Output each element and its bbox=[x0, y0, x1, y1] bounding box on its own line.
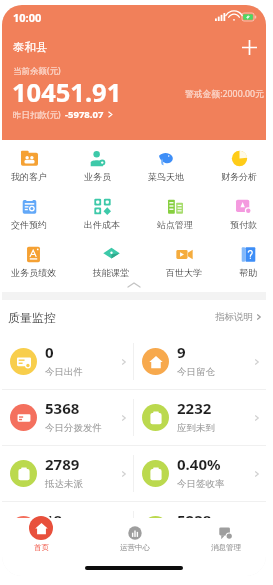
button[interactable]: 技能课堂 bbox=[90, 246, 132, 278]
button[interactable]: 菜鸟天地 bbox=[145, 150, 187, 182]
button[interactable]: 5368 bbox=[2, 390, 133, 445]
button[interactable]: 0 bbox=[2, 334, 133, 389]
staticText: 预付款 bbox=[230, 219, 257, 230]
button[interactable]: 消息管理 bbox=[197, 526, 255, 552]
staticText: 0.40% bbox=[177, 454, 221, 474]
staticText: 问题件 bbox=[45, 534, 74, 546]
staticText: 0 bbox=[45, 342, 54, 362]
button[interactable]: 运营中心 bbox=[106, 526, 164, 552]
staticText: 当前余额(元) bbox=[13, 65, 61, 77]
staticText: 百世大学 bbox=[166, 267, 202, 278]
button[interactable]: 财务分析 bbox=[218, 150, 260, 182]
staticText: 抵达未派 bbox=[45, 478, 83, 490]
staticText: 警戒金额:2000.00元 bbox=[185, 88, 264, 100]
staticText: 业务员 bbox=[84, 171, 111, 182]
button[interactable]: 业务员绩效 bbox=[8, 246, 59, 278]
button[interactable]: Add bbox=[238, 36, 260, 58]
staticText: 交件预约 bbox=[11, 219, 47, 230]
button[interactable]: 帮助 bbox=[236, 246, 260, 278]
staticText: 5368 bbox=[45, 398, 80, 418]
button[interactable]: 交件预约 bbox=[8, 198, 50, 230]
button[interactable]: 昨日扣款(元) bbox=[13, 108, 114, 121]
staticText: 质量监控 bbox=[8, 310, 56, 325]
staticText: 10451.91 bbox=[12, 75, 122, 110]
button[interactable]: 站点管理 bbox=[154, 198, 196, 230]
staticText: -5978.07 bbox=[65, 108, 104, 121]
button[interactable]: 出件成本 bbox=[81, 198, 123, 230]
button[interactable]: 预付款 bbox=[227, 198, 260, 230]
staticText: 技能课堂 bbox=[93, 267, 129, 278]
staticText: 业务员绩效 bbox=[11, 267, 56, 278]
staticText: 应到未到 bbox=[177, 422, 215, 434]
staticText: 菜鸟天地 bbox=[148, 171, 184, 182]
staticText: 首页 bbox=[34, 543, 49, 552]
button[interactable]: 9 bbox=[134, 334, 266, 389]
button[interactable]: 2789 bbox=[2, 446, 133, 501]
staticText: 今日签收率 bbox=[177, 478, 225, 490]
staticText: 今日分拨发件 bbox=[45, 422, 102, 434]
button[interactable]: 5238 bbox=[134, 502, 266, 557]
button[interactable]: 百世大学 bbox=[163, 246, 205, 278]
staticText: 消息管理 bbox=[211, 543, 241, 552]
staticText: 我的客户 bbox=[11, 171, 47, 182]
staticText: 10:00 bbox=[13, 10, 42, 25]
staticText: 站点管理 bbox=[157, 219, 193, 230]
staticText: 今日出件 bbox=[45, 366, 83, 378]
button[interactable]: 首页 bbox=[12, 514, 70, 552]
button[interactable]: Collapse bbox=[2, 278, 266, 292]
staticText: 帮助 bbox=[239, 267, 257, 278]
staticText: 指标说明 bbox=[215, 311, 253, 323]
button[interactable]: 18 bbox=[2, 502, 133, 557]
button[interactable]: 指标说明 bbox=[215, 311, 262, 323]
staticText: 5238 bbox=[177, 510, 212, 530]
staticText: 9 bbox=[177, 342, 186, 362]
staticText: 泰和县 bbox=[13, 40, 48, 54]
button[interactable]: 2232 bbox=[134, 390, 266, 445]
staticText: 昨日扣款(元) bbox=[13, 109, 61, 121]
staticText: 出件成本 bbox=[84, 219, 120, 230]
button[interactable]: 0.40% bbox=[134, 446, 266, 501]
staticText: 2232 bbox=[177, 398, 212, 418]
staticText: 18 bbox=[45, 510, 63, 530]
staticText: 今日留仓 bbox=[177, 366, 215, 378]
staticText: 2789 bbox=[45, 454, 80, 474]
staticText: 财务分析 bbox=[221, 171, 257, 182]
button[interactable]: 我的客户 bbox=[8, 150, 50, 182]
staticText: 运营中心 bbox=[120, 543, 150, 552]
button[interactable]: 业务员 bbox=[81, 150, 114, 182]
